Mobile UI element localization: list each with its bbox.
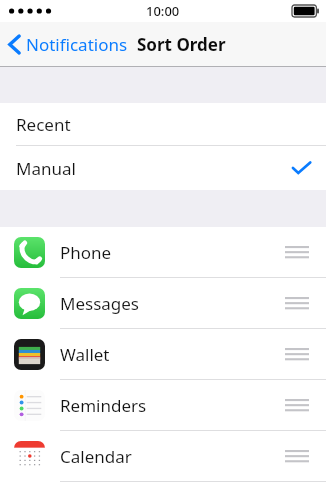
button[interactable]: Reorder Wallet: [280, 342, 314, 366]
staticText: Sort Order: [137, 33, 226, 56]
button[interactable]: Reorder Reminders: [280, 393, 314, 417]
button[interactable]: Reorder Messages: [280, 291, 314, 315]
staticText: Wallet: [60, 343, 110, 366]
staticText: Manual: [16, 157, 76, 180]
staticText: Reminders: [60, 394, 147, 417]
button[interactable]: Messages: [0, 278, 326, 328]
staticText: Messages: [60, 292, 140, 315]
button[interactable]: Phone: [0, 227, 326, 277]
button[interactable]: Wallet: [0, 329, 326, 379]
button[interactable]: Manual: [0, 146, 326, 190]
button[interactable]: Reorder Calendar: [280, 444, 314, 468]
staticText: 10:00: [146, 2, 180, 20]
button[interactable]: Calendar: [0, 431, 326, 481]
button[interactable]: Recent: [0, 103, 326, 145]
staticText: Phone: [60, 241, 112, 264]
staticText: Notifications: [26, 33, 128, 56]
button[interactable]: Reminders: [0, 380, 326, 430]
staticText: Recent: [16, 113, 71, 136]
button[interactable]: Reorder Phone: [280, 240, 314, 264]
button[interactable]: Notifications: [0, 25, 130, 64]
staticText: Calendar: [60, 445, 132, 468]
